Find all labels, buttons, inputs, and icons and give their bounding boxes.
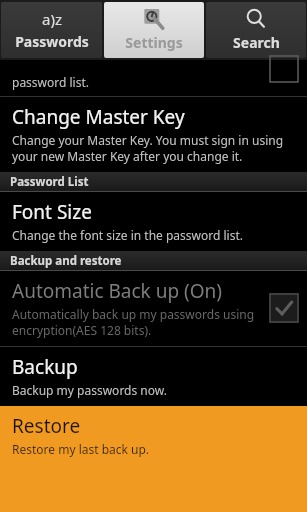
button[interactable]: Settings [104,2,204,58]
button[interactable]: Backup [0,347,307,406]
staticText: Search [233,33,280,52]
button[interactable]: Automatic Back up (On) [0,271,307,346]
staticText: Restore [12,413,81,439]
staticText: Automatically back up my passwords using… [12,306,261,338]
button[interactable]: Change Master Key [0,97,307,172]
staticText: Automatic Back up (On) [12,278,223,304]
staticText: Restore my last back up. [12,441,150,457]
button[interactable]: a)z [1,2,102,58]
staticText: Backup my passwords now. [12,382,167,398]
staticText: Backup and restore [10,253,122,269]
staticText: Font Size [12,199,92,225]
button[interactable]: Search [206,2,306,58]
staticText: Change your Master Key. You must sign in… [12,132,299,164]
staticText: password list. [12,74,90,90]
button[interactable]: password list. [0,60,307,96]
staticText: a)z [42,9,62,29]
staticText: Change the font size in the password lis… [12,227,243,243]
staticText: Change Master Key [12,104,185,130]
button[interactable]: Font Size [0,192,307,251]
staticText: Backup [12,354,78,380]
staticText: Passwords [15,32,89,51]
button[interactable]: Restore [0,406,307,465]
staticText: Settings [125,33,183,52]
staticText: Password List [10,174,89,190]
